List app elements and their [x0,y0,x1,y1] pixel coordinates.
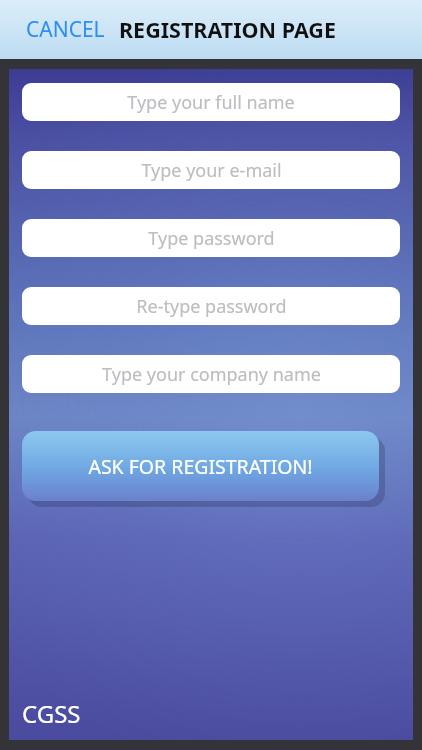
button[interactable]: CANCEL [0,9,113,50]
staticText: ASK FOR REGISTRATION! [88,453,313,480]
staticText: Type password [148,226,275,251]
button[interactable]: Type your e-mail [22,151,400,189]
button[interactable]: Type password [22,219,400,257]
staticText: Re-type password [136,294,287,319]
button[interactable]: Type your company name [22,355,400,393]
button[interactable]: Re-type password [22,287,400,325]
staticText: REGISTRATION PAGE [119,15,336,44]
staticText: Type your e-mail [141,158,282,183]
button[interactable]: Type your full name [22,83,400,121]
staticText: Type your full name [127,90,295,115]
staticText: Type your company name [102,362,321,387]
button[interactable]: ASK FOR REGISTRATION! [22,431,379,501]
staticText: CGSS [22,697,81,730]
staticText: CANCEL [26,15,105,44]
